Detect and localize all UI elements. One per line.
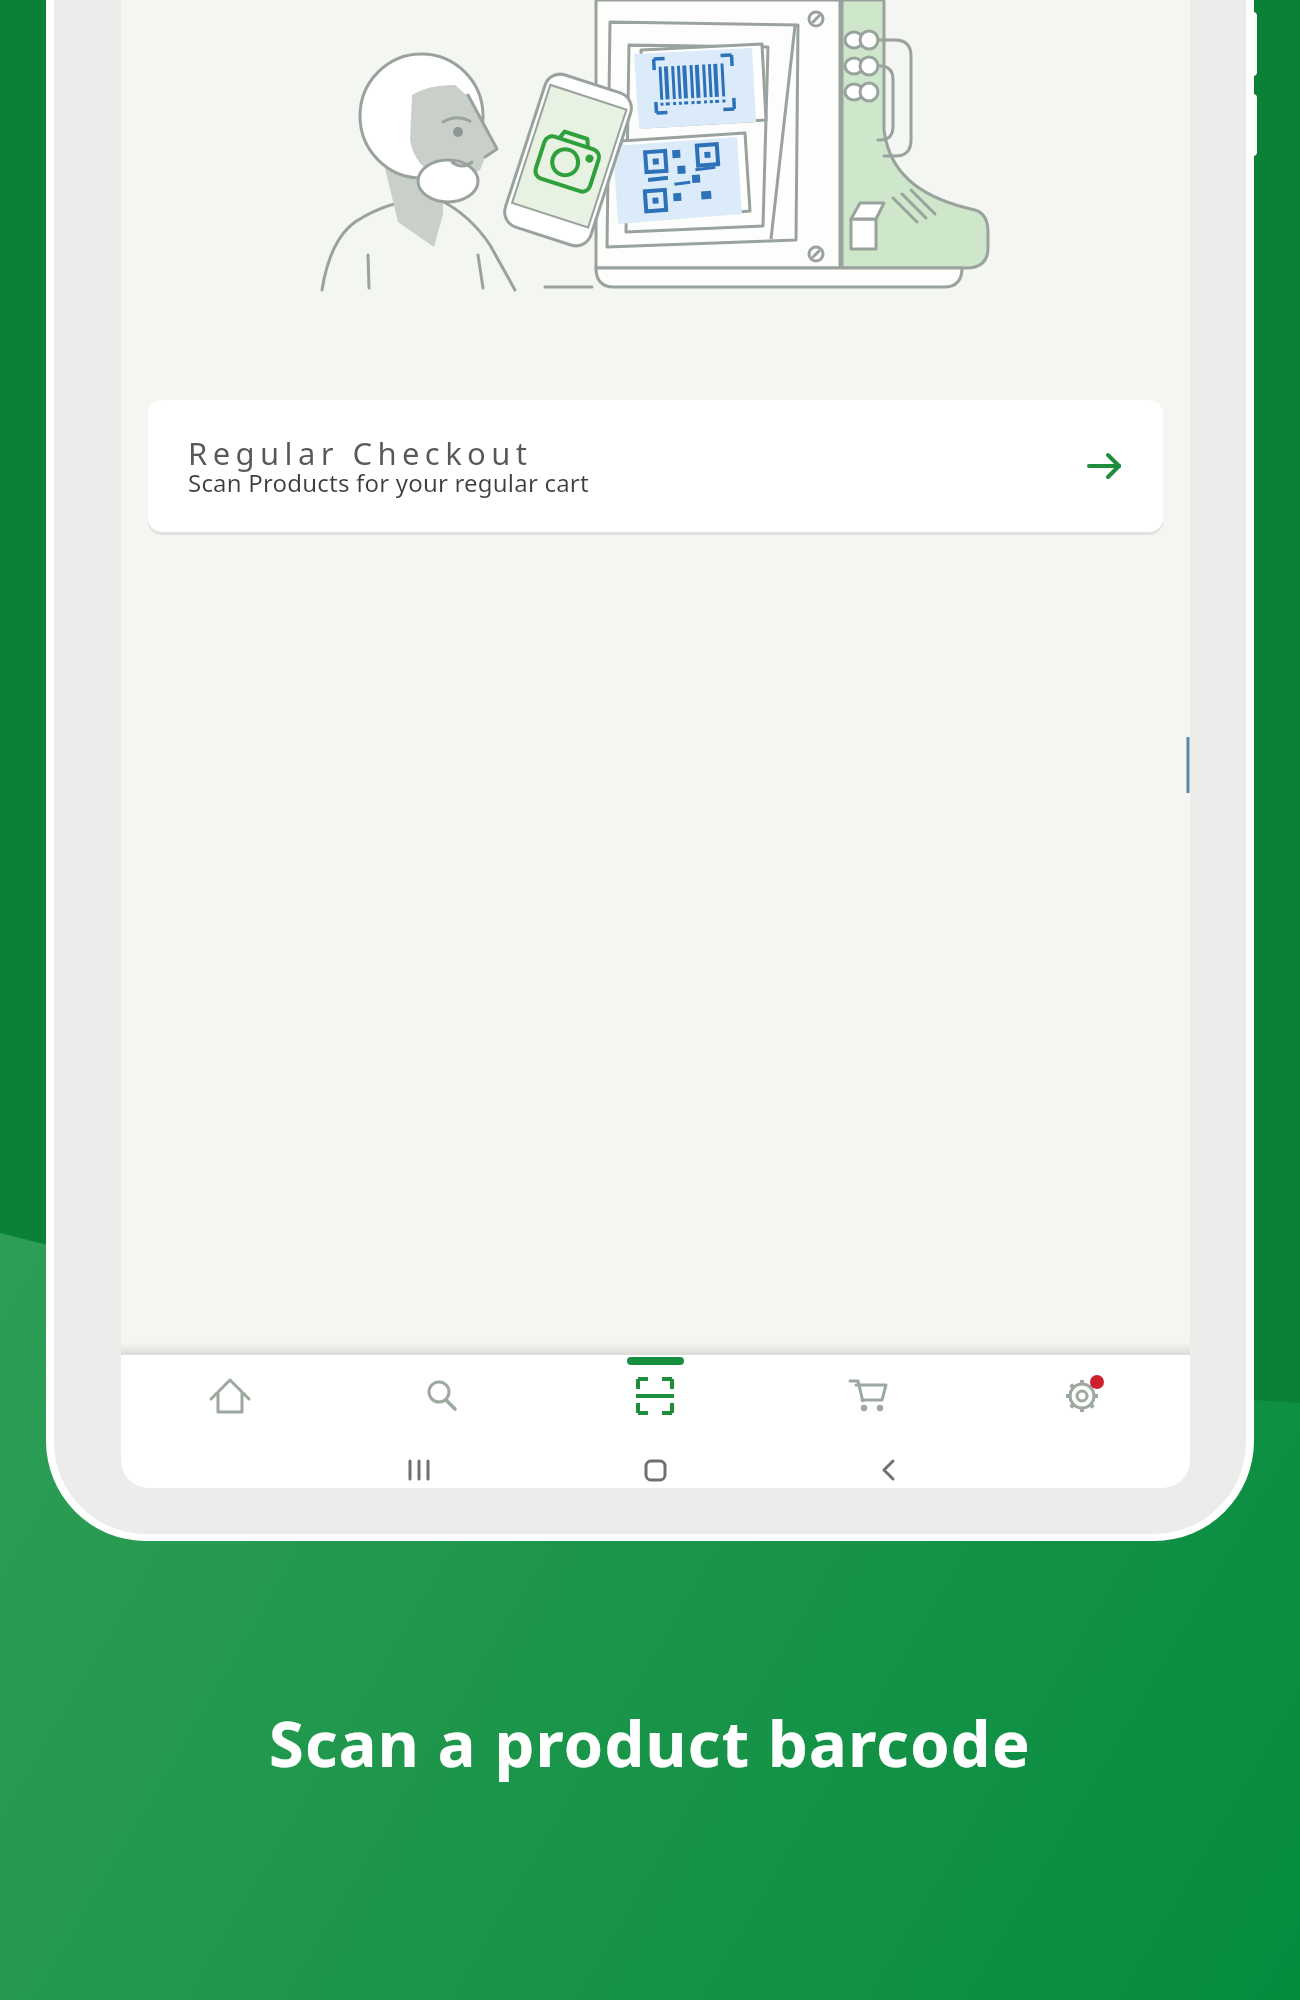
button[interactable] bbox=[615, 1356, 695, 1436]
staticText: Scan a product barcode bbox=[269, 1700, 1031, 1786]
button[interactable] bbox=[190, 1356, 270, 1436]
staticText: Scan Products for your regular cart bbox=[188, 466, 589, 499]
button[interactable] bbox=[620, 1435, 690, 1505]
button[interactable] bbox=[1042, 1356, 1122, 1436]
staticText: Regular Checkout bbox=[188, 432, 533, 474]
button[interactable] bbox=[853, 1435, 923, 1505]
button[interactable]: Regular Checkout bbox=[148, 400, 1163, 532]
button[interactable] bbox=[402, 1356, 482, 1436]
button[interactable] bbox=[384, 1435, 454, 1505]
button[interactable] bbox=[828, 1356, 908, 1436]
